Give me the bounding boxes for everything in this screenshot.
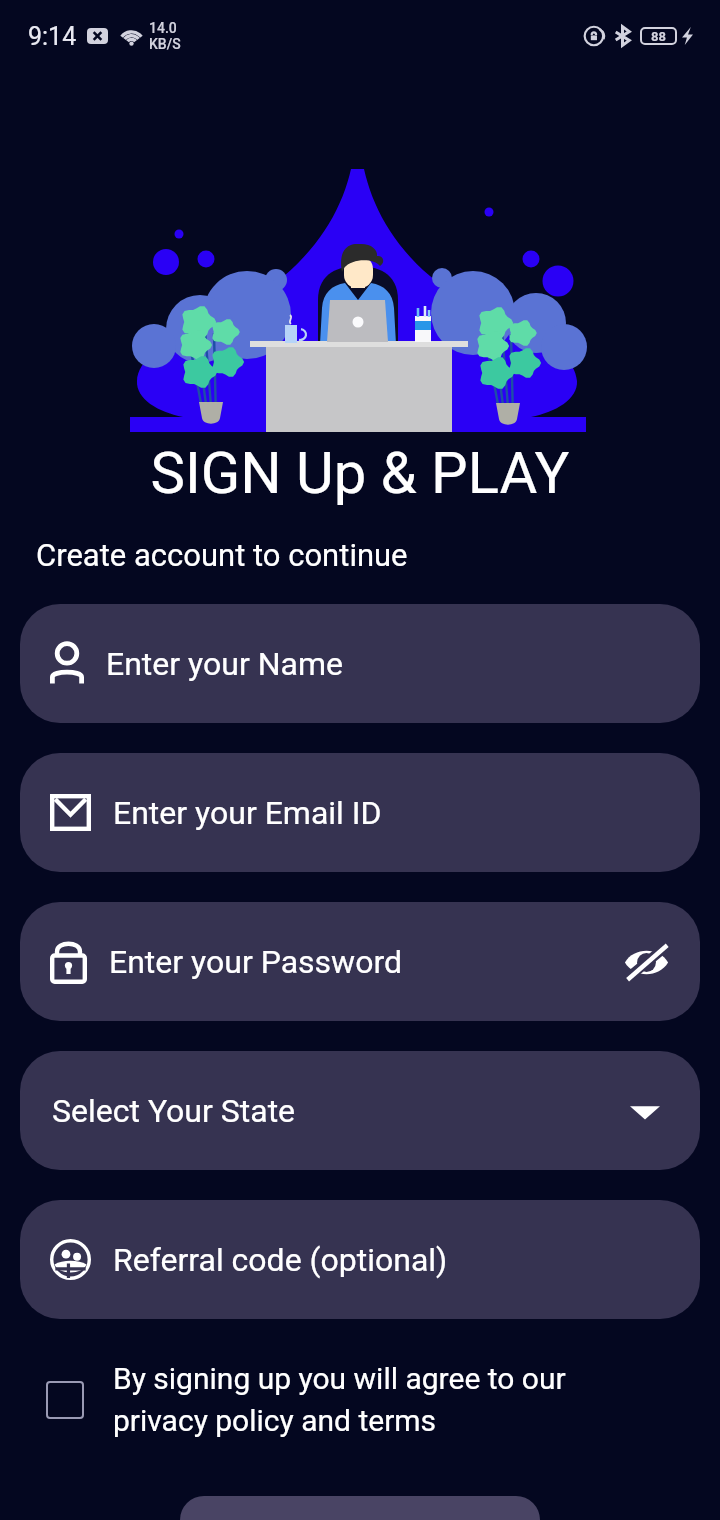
button[interactable]: Referral [20, 1200, 700, 1319]
button[interactable] [180, 1496, 540, 1520]
staticText: 9:14 [28, 22, 77, 51]
other: Password [50, 940, 87, 984]
button[interactable]: Password [20, 902, 700, 1021]
button[interactable]: Name [20, 604, 700, 723]
staticText: Enter your Email ID [113, 794, 382, 832]
button[interactable]: Select Your State [20, 1051, 700, 1170]
staticText: 88 [651, 29, 666, 44]
other: Email [50, 794, 91, 831]
staticText: Referral code (optional) [113, 1241, 448, 1279]
staticText: 14.0 [149, 20, 177, 36]
staticText: Enter your Name [106, 645, 343, 683]
button[interactable]: Email [20, 753, 700, 872]
staticText: Create account to continue [36, 537, 408, 573]
staticText: KB/S [149, 36, 181, 52]
button[interactable]: Show password [620, 938, 672, 986]
button[interactable]: By signing up you will agree to our priv… [46, 1361, 698, 1439]
other: Name [50, 641, 84, 686]
other: Referral [50, 1239, 91, 1280]
staticText: Enter your Password [109, 943, 402, 981]
staticText: Select Your State [52, 1092, 296, 1130]
staticText: SIGN Up & PLAY [0, 439, 720, 507]
staticText: By signing up you will agree to our priv… [113, 1361, 566, 1439]
